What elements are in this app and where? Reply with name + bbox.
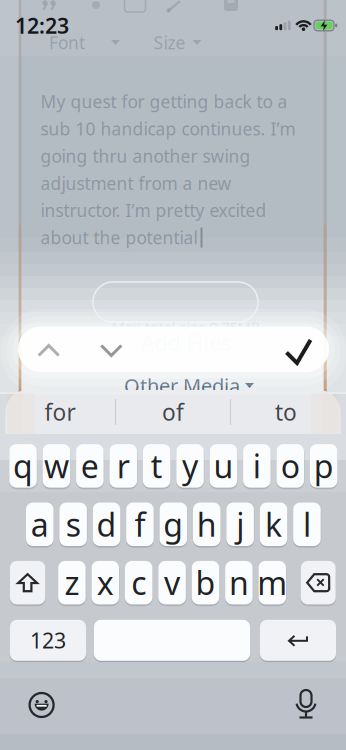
button[interactable]: g xyxy=(160,502,187,546)
staticText: for xyxy=(44,397,75,427)
staticText: q xyxy=(13,445,33,487)
button[interactable]: e xyxy=(76,444,104,488)
button[interactable]: for xyxy=(10,392,110,432)
staticText: u xyxy=(213,445,233,487)
button[interactable]: t xyxy=(143,444,170,488)
button[interactable]: Next field xyxy=(96,342,126,359)
staticText: b xyxy=(195,561,215,604)
staticText: d xyxy=(96,503,116,546)
staticText: sub 10 handicap continues. I’m xyxy=(40,117,295,140)
staticText: z xyxy=(64,561,79,604)
staticText: Other Media xyxy=(124,372,240,399)
button[interactable]: Size xyxy=(153,31,201,54)
staticText: of xyxy=(162,397,184,427)
button[interactable]: f xyxy=(126,502,154,546)
button[interactable]: Return xyxy=(260,620,336,661)
button[interactable]: Space xyxy=(94,620,250,661)
button[interactable]: Delete xyxy=(301,561,336,604)
staticText: about the potential xyxy=(40,226,197,249)
button[interactable]: c xyxy=(125,561,152,604)
button[interactable]: Font xyxy=(49,31,120,54)
staticText: Size xyxy=(153,31,185,54)
button[interactable]: k xyxy=(260,502,287,546)
button[interactable]: Emoji xyxy=(29,692,55,718)
staticText: adjustment from a new xyxy=(40,172,231,195)
staticText: s xyxy=(66,503,81,546)
button[interactable]: n xyxy=(225,561,253,604)
staticText: k xyxy=(265,503,282,546)
button[interactable]: q xyxy=(9,444,37,488)
staticText: Font xyxy=(49,31,85,54)
button[interactable]: y xyxy=(176,444,204,488)
staticText: v xyxy=(164,561,180,604)
button[interactable]: w xyxy=(43,444,70,488)
staticText: going thru another swing xyxy=(40,144,250,167)
staticText: p xyxy=(314,445,334,487)
staticText: 123 xyxy=(30,626,66,654)
button[interactable]: a xyxy=(26,502,53,546)
staticText: g xyxy=(163,503,183,546)
staticText: e xyxy=(81,445,99,487)
staticText: f xyxy=(134,503,145,546)
staticText: t xyxy=(151,445,163,487)
button[interactable]: v xyxy=(158,561,186,604)
button[interactable]: u xyxy=(210,444,237,488)
staticText: o xyxy=(281,445,300,487)
staticText: My quest for getting back to a xyxy=(40,90,287,113)
staticText: a xyxy=(31,503,49,546)
staticText: to xyxy=(275,397,297,427)
button[interactable]: 123 xyxy=(10,620,86,661)
button[interactable]: b xyxy=(192,561,219,604)
staticText: m xyxy=(257,561,287,604)
button[interactable]: Shift xyxy=(10,561,45,604)
staticText: r xyxy=(117,445,130,487)
button[interactable]: i xyxy=(243,444,271,488)
button[interactable]: l xyxy=(293,502,321,546)
button[interactable]: x xyxy=(92,561,119,604)
button[interactable]: s xyxy=(59,502,87,546)
staticText: h xyxy=(197,503,217,546)
button[interactable]: Previous field xyxy=(34,342,64,359)
staticText: y xyxy=(182,445,198,487)
staticText: l xyxy=(303,503,311,546)
staticText: n xyxy=(229,561,249,604)
staticText: 12:23 xyxy=(15,11,69,40)
staticText: w xyxy=(44,445,69,487)
staticText: instructor. I’m pretty excited xyxy=(40,199,266,222)
button[interactable]: of xyxy=(123,392,223,432)
staticText: Max total size 9.75MB xyxy=(111,317,260,337)
staticText: j xyxy=(236,503,244,546)
button[interactable]: Done xyxy=(283,338,313,365)
button[interactable]: j xyxy=(226,502,254,546)
button[interactable]: h xyxy=(193,502,220,546)
button[interactable]: r xyxy=(109,444,137,488)
button[interactable]: Dictate xyxy=(293,690,319,721)
button[interactable]: p xyxy=(310,444,337,488)
button[interactable]: to xyxy=(236,392,336,432)
staticText: i xyxy=(253,445,261,487)
button[interactable]: o xyxy=(276,444,304,488)
staticText: x xyxy=(97,561,114,604)
button[interactable]: m xyxy=(258,561,286,604)
button[interactable]: z xyxy=(58,561,86,604)
staticText: c xyxy=(131,561,146,604)
button[interactable]: d xyxy=(93,502,120,546)
button[interactable]: Other Media xyxy=(124,372,254,399)
